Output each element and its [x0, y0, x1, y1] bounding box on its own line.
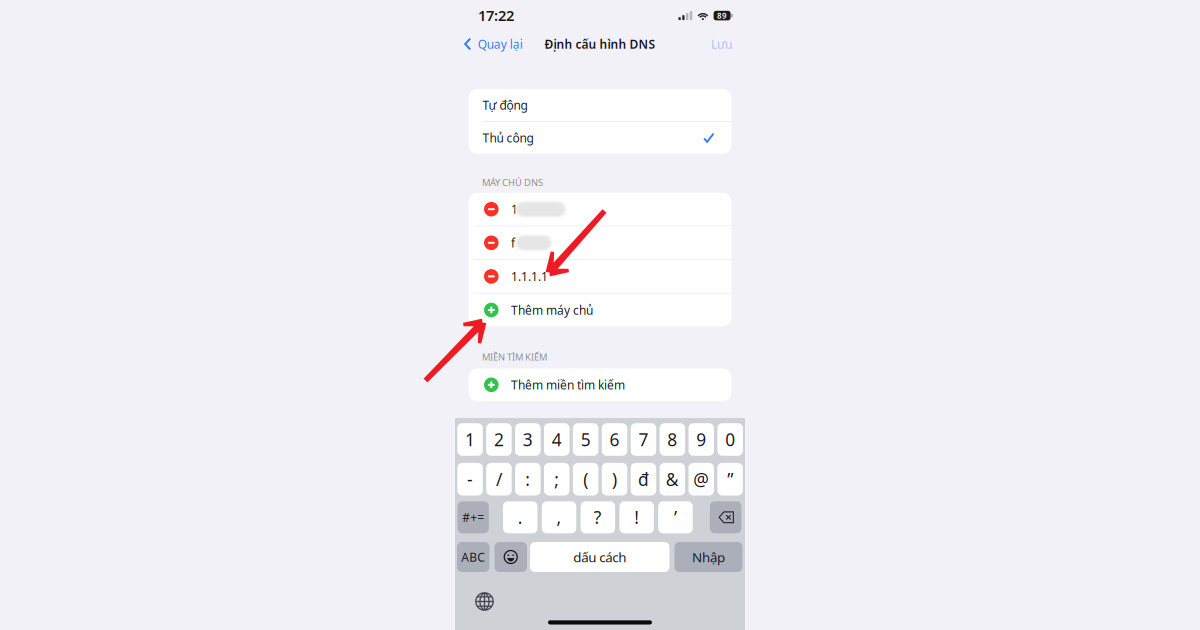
button[interactable]: 1: [457, 423, 483, 456]
button[interactable]: (: [573, 463, 598, 495]
staticText: 17:22: [478, 6, 514, 25]
button[interactable]: ,: [542, 501, 576, 533]
staticText: 5: [581, 428, 591, 451]
button[interactable]: Quay lại: [459, 32, 528, 56]
staticText: ’: [674, 506, 677, 529]
button[interactable]: Switch keyboard: [475, 592, 494, 611]
staticText: ): [612, 468, 617, 491]
staticText: &: [666, 468, 679, 491]
button[interactable]: @: [688, 463, 714, 495]
staticText: 1: [511, 201, 518, 217]
staticText: 6: [609, 428, 619, 451]
staticText: 8: [667, 428, 677, 451]
button[interactable]: 3: [515, 423, 541, 456]
staticText: 0: [725, 428, 735, 451]
staticText: MIỀN TÌM KIẾM: [482, 351, 547, 363]
button[interactable]: Lưu: [705, 32, 738, 56]
button[interactable]: :: [515, 463, 541, 495]
button[interactable]: #+=: [457, 501, 489, 533]
staticText: #+=: [462, 509, 484, 525]
button[interactable]: 1.1.1.1: [468, 260, 731, 293]
button[interactable]: ”: [717, 463, 743, 495]
staticText: Thêm máy chủ: [511, 302, 593, 318]
button[interactable]: 5: [573, 423, 598, 456]
staticText: 1: [465, 428, 475, 451]
button[interactable]: /: [486, 463, 512, 495]
button[interactable]: ?: [581, 501, 615, 533]
staticText: :: [525, 468, 530, 491]
staticText: ?: [594, 506, 602, 529]
staticText: .: [518, 506, 523, 529]
button[interactable]: f: [468, 226, 731, 259]
staticText: ABC: [461, 549, 485, 565]
button[interactable]: ’: [658, 501, 693, 533]
button[interactable]: .: [503, 501, 537, 533]
button[interactable]: ;: [544, 463, 569, 495]
button[interactable]: Thêm máy chủ: [468, 294, 731, 326]
button[interactable]: 0: [717, 423, 743, 456]
button[interactable]: &: [660, 463, 685, 495]
staticText: dấu cách: [573, 548, 626, 566]
button[interactable]: 1: [468, 193, 731, 226]
staticText: đ: [638, 468, 649, 491]
button[interactable]: Delete: [710, 501, 741, 533]
staticText: 89: [717, 10, 727, 21]
button[interactable]: Thủ công: [468, 122, 731, 154]
button[interactable]: !: [619, 501, 654, 533]
button[interactable]: ABC: [457, 542, 489, 572]
button[interactable]: -: [457, 463, 483, 495]
staticText: ,: [556, 506, 561, 529]
button[interactable]: Emoji: [494, 542, 527, 572]
staticText: !: [634, 506, 639, 529]
staticText: Thủ công: [482, 130, 533, 146]
button[interactable]: Nhập: [674, 542, 742, 572]
staticText: -: [467, 468, 473, 491]
staticText: Định cấu hình DNS: [544, 36, 655, 52]
staticText: MÁY CHỦ DNS: [482, 176, 543, 188]
button[interactable]: đ: [631, 463, 656, 495]
staticText: 9: [696, 428, 706, 451]
staticText: ”: [727, 468, 733, 491]
button[interactable]: 8: [660, 423, 685, 456]
button[interactable]: 4: [544, 423, 569, 456]
staticText: 7: [638, 428, 648, 451]
button[interactable]: 7: [631, 423, 656, 456]
staticText: f: [511, 235, 515, 251]
staticText: 2: [494, 428, 504, 451]
button[interactable]: 9: [688, 423, 714, 456]
button[interactable]: dấu cách: [530, 542, 669, 572]
staticText: ;: [554, 468, 559, 491]
button[interactable]: Thêm miền tìm kiếm: [468, 368, 731, 401]
staticText: Quay lại: [478, 36, 523, 52]
staticText: 3: [523, 428, 533, 451]
staticText: Thêm miền tìm kiếm: [511, 377, 625, 393]
staticText: /: [496, 468, 502, 491]
staticText: 1.1.1.1: [511, 268, 548, 284]
staticText: @: [693, 468, 709, 491]
button[interactable]: Tự động: [468, 89, 731, 121]
staticText: (: [583, 468, 588, 491]
button[interactable]: 2: [486, 423, 512, 456]
button[interactable]: 6: [602, 423, 627, 456]
staticText: Lưu: [711, 36, 732, 52]
button[interactable]: ): [602, 463, 627, 495]
staticText: Nhập: [692, 548, 725, 566]
staticText: 4: [552, 428, 562, 451]
staticText: Tự động: [482, 97, 527, 113]
